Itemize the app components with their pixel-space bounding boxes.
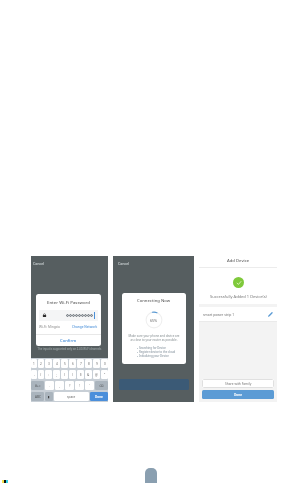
staticText: Done — [234, 393, 243, 397]
staticText: $ — [80, 373, 82, 377]
staticText: Share with Family — [225, 382, 252, 386]
staticText: , — [59, 384, 60, 388]
staticText: ▮ — [48, 395, 50, 399]
button[interactable]: : — [45, 370, 52, 379]
staticText: 9 — [96, 362, 98, 366]
button[interactable]: ( — [61, 370, 68, 379]
button[interactable]: $ — [77, 370, 84, 379]
staticText: ' — [89, 384, 90, 388]
button[interactable]: & — [85, 370, 92, 379]
button[interactable]: Done — [202, 390, 274, 399]
button[interactable]: @ — [93, 370, 100, 379]
button[interactable]: ' — [85, 381, 94, 390]
staticText: Add Device — [227, 258, 250, 264]
staticText: / — [40, 373, 42, 377]
button[interactable]: ABC — [31, 392, 44, 401]
button[interactable]: space — [54, 392, 89, 401]
button[interactable]: ? — [65, 381, 74, 390]
staticText: 7 — [80, 362, 82, 366]
staticText: Cancel — [33, 261, 45, 266]
staticText: 6 — [72, 362, 74, 366]
staticText: Confirm — [60, 338, 77, 344]
staticText: " — [104, 373, 106, 377]
staticText: Register device to the cloud — [139, 350, 176, 354]
staticText: ; — [56, 373, 57, 377]
staticText: 5 — [64, 362, 66, 366]
button[interactable]: 6 — [69, 359, 76, 368]
staticText: smart power strip 1 — [203, 312, 235, 317]
staticText: - — [34, 373, 35, 377]
staticText: Initializing your Device — [139, 354, 169, 358]
staticText: Searching for Device — [139, 346, 166, 350]
staticText: ⌫ — [99, 384, 104, 388]
button[interactable]: ⌫ — [95, 381, 108, 390]
button[interactable]: smart power strip 1 — [199, 307, 277, 321]
button[interactable]: ; — [53, 370, 60, 379]
staticText: & — [87, 373, 90, 377]
staticText: Make sure your phone and device are as c… — [128, 334, 180, 342]
button[interactable]: Rename device — [268, 312, 273, 317]
button[interactable]: ▮ — [45, 392, 53, 401]
button[interactable]: Change Network — [72, 325, 98, 329]
button[interactable]: 3 — [45, 359, 52, 368]
staticText: 0 — [104, 362, 106, 366]
staticText: The input is supported only on 2.4G Wi-F… — [31, 347, 108, 351]
button[interactable]: 8 — [85, 359, 92, 368]
staticText: ABC — [35, 395, 41, 399]
staticText: . — [49, 384, 50, 388]
staticText: #+= — [35, 384, 41, 388]
button[interactable]: 4 — [53, 359, 60, 368]
staticText: ! — [79, 384, 80, 388]
staticText: 65% — [150, 318, 158, 323]
staticText: space — [67, 395, 76, 399]
button[interactable]: 1 — [31, 359, 37, 368]
staticText: ? — [69, 384, 71, 388]
staticText: 3 — [48, 362, 50, 366]
staticText: ( — [64, 373, 65, 377]
button[interactable]: 9 — [93, 359, 100, 368]
staticText: 4 — [56, 362, 58, 366]
staticText: : — [48, 373, 49, 377]
staticText: Done — [95, 395, 103, 399]
button[interactable]: #+= — [31, 381, 44, 390]
button[interactable]: Done — [90, 392, 108, 401]
staticText: 8 — [88, 362, 90, 366]
button[interactable]: " — [101, 370, 108, 379]
staticText: Successfully Added 1 Device(s) — [210, 294, 267, 299]
staticText: Wi-Fi: Mingxia — [39, 325, 60, 329]
button[interactable]: ) — [69, 370, 76, 379]
staticText: 1 — [33, 362, 35, 366]
button[interactable]: . — [45, 381, 54, 390]
button[interactable]: 5 — [61, 359, 68, 368]
button[interactable]: 2 — [38, 359, 44, 368]
button[interactable]: , — [55, 381, 64, 390]
button[interactable]: Confirm — [36, 335, 101, 346]
staticText: 2 — [40, 362, 42, 366]
staticText: Enter Wi-Fi Password — [36, 299, 101, 305]
button[interactable]: Share with Family — [202, 379, 274, 388]
button[interactable]: 0 — [101, 359, 108, 368]
staticText: ) — [72, 373, 73, 377]
button[interactable]: ! — [75, 381, 84, 390]
staticText: Cancel — [118, 261, 130, 266]
button[interactable]: / — [38, 370, 44, 379]
button[interactable]: - — [31, 370, 37, 379]
button[interactable]: 7 — [77, 359, 84, 368]
staticText: Connecting Now — [137, 298, 171, 304]
staticText: @ — [95, 373, 98, 377]
